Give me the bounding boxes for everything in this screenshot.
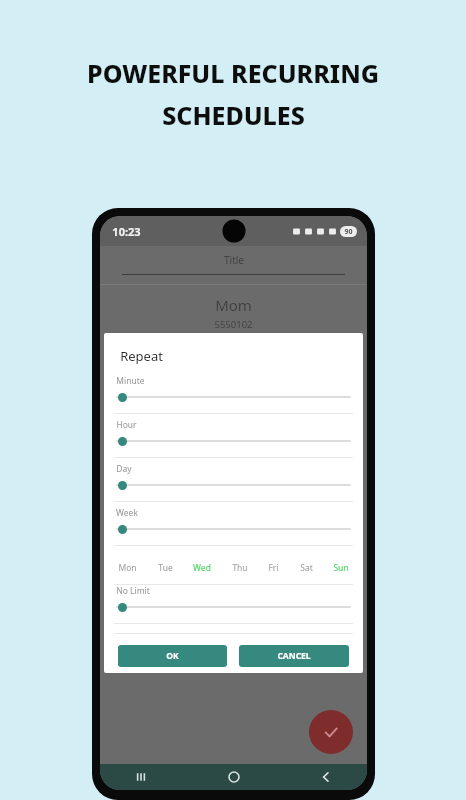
button[interactable]: [116, 601, 351, 613]
staticText: Minute: [116, 375, 145, 387]
staticText: OK: [166, 650, 179, 662]
button[interactable]: Home: [221, 764, 247, 790]
button[interactable]: Save: [309, 710, 353, 754]
button[interactable]: Pick date: [106, 396, 148, 438]
staticText: Hang Up: [110, 528, 148, 540]
staticText: Hour: [116, 419, 137, 431]
button[interactable]: Sun: [331, 560, 351, 576]
button[interactable]: [116, 435, 351, 447]
button[interactable]: Fri: [266, 560, 281, 576]
button[interactable]: CANCEL: [239, 645, 349, 667]
button[interactable]: [116, 479, 351, 491]
button[interactable]: Sat: [298, 560, 315, 576]
button[interactable]: Pick time: [106, 448, 148, 490]
button[interactable]: Tue: [156, 560, 175, 576]
button[interactable]: Thu: [230, 560, 250, 576]
staticText: Tue: [158, 562, 173, 574]
button[interactable]: [116, 391, 351, 403]
staticText: 5550102: [214, 318, 253, 331]
button[interactable]: Wed: [191, 560, 213, 576]
staticText: No Limit: [116, 585, 150, 597]
staticText: Day: [116, 463, 132, 475]
staticText: 10:23: [112, 224, 141, 239]
button[interactable]: [116, 523, 351, 535]
staticText: Sat: [300, 562, 313, 574]
button[interactable]: OK: [118, 645, 227, 667]
staticText: CANCEL: [277, 650, 311, 662]
staticText: Week: [116, 507, 138, 519]
staticText: Mom: [215, 295, 252, 315]
staticText: Title: [224, 253, 244, 267]
staticText: Thu: [232, 562, 248, 574]
staticText: Repeat: [120, 347, 163, 365]
staticText: Sun: [333, 562, 349, 574]
staticText: Mon: [118, 562, 137, 574]
staticText: 90: [344, 227, 353, 237]
staticText: POWERFUL RECURRING: [87, 56, 379, 90]
button[interactable]: Mon: [116, 560, 139, 576]
button[interactable]: Back: [313, 764, 339, 790]
button[interactable]: Recent apps: [128, 764, 154, 790]
staticText: Wed: [193, 562, 211, 574]
staticText: Fri: [268, 562, 279, 574]
staticText: SCHEDULES: [162, 98, 305, 132]
